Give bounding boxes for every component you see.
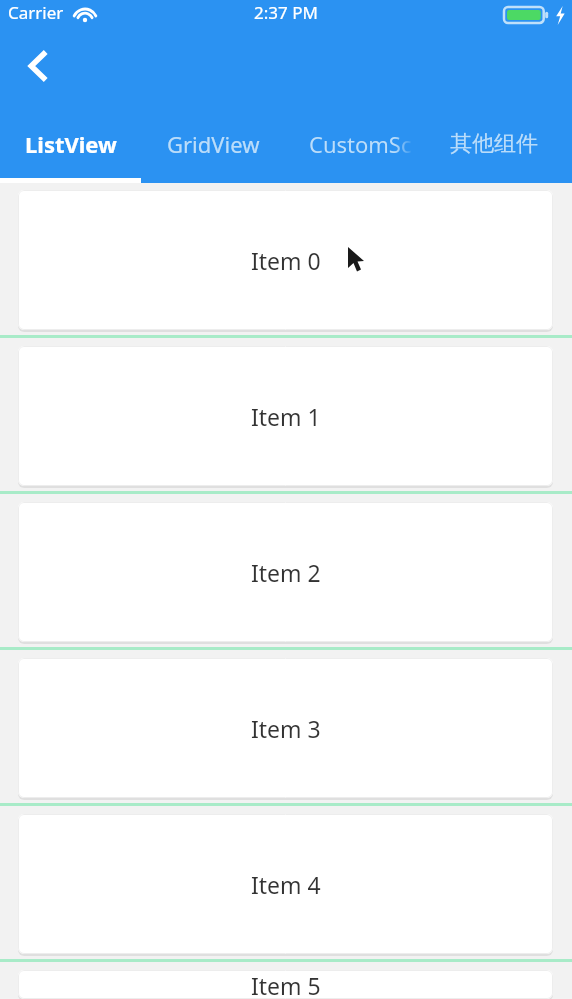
button[interactable]: ListView [0, 105, 141, 183]
staticText: GridView [167, 129, 260, 159]
button[interactable]: Item 0 [18, 190, 553, 330]
button[interactable]: 其他组件 [416, 105, 572, 183]
staticText: ListView [25, 129, 117, 159]
button[interactable]: Item 2 [18, 502, 553, 642]
staticText: 其他组件 [450, 130, 538, 158]
staticText: Item 2 [251, 557, 321, 588]
staticText: Item 0 [251, 245, 321, 276]
staticText: Item 4 [251, 869, 321, 900]
staticText: Item 5 [251, 970, 321, 999]
button[interactable]: Back [6, 38, 70, 94]
button[interactable]: Item 5 [18, 970, 553, 999]
button[interactable]: Item 1 [18, 346, 553, 486]
staticText: CustomScroll [309, 129, 439, 159]
staticText: Item 1 [251, 401, 321, 432]
button[interactable]: GridView [141, 105, 286, 183]
button[interactable]: Item 3 [18, 658, 553, 798]
button[interactable]: CustomScroll [286, 105, 416, 183]
staticText: 2:37 PM [254, 1, 318, 24]
button[interactable]: Item 4 [18, 814, 553, 954]
staticText: Carrier [8, 1, 64, 24]
staticText: Item 3 [251, 713, 321, 744]
